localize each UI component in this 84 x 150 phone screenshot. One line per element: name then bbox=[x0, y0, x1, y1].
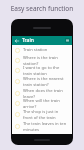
button[interactable]: Search bbox=[65, 38, 70, 43]
button[interactable]: Where is the nearest train station? bbox=[12, 75, 72, 88]
button[interactable]: Back bbox=[14, 38, 20, 44]
staticText: When does the train leave? bbox=[23, 88, 69, 98]
staticText: Easy search function bbox=[0, 4, 84, 13]
staticText: The train leaves in ten minutes bbox=[23, 121, 69, 131]
button[interactable]: When will the train arrive? bbox=[12, 98, 72, 108]
button[interactable]: I want to go to the train station bbox=[12, 65, 72, 75]
button[interactable]: The shop is just in front of the train s… bbox=[12, 108, 72, 121]
button[interactable]: When does the train leave? bbox=[12, 88, 72, 98]
staticText: Train bbox=[22, 37, 34, 44]
button[interactable]: Train station bbox=[12, 45, 72, 55]
button[interactable]: Where is the train station? bbox=[12, 55, 72, 65]
staticText: When will the train arrive? bbox=[23, 98, 69, 108]
staticText: Train station bbox=[23, 47, 69, 53]
staticText: Where is the train station? bbox=[23, 55, 69, 65]
staticText: I want to go to the train station bbox=[23, 65, 69, 75]
staticText: The shop is just in front of the train s… bbox=[23, 109, 69, 120]
staticText: Where is the nearest train station? bbox=[23, 76, 69, 87]
button[interactable]: The train leaves in ten minutes bbox=[12, 121, 72, 131]
